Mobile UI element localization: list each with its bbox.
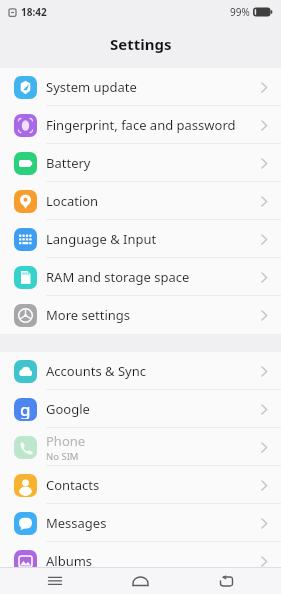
button[interactable]: Accounts & Sync bbox=[0, 352, 281, 390]
button[interactable] bbox=[12, 568, 97, 594]
button[interactable]: Location bbox=[0, 182, 281, 220]
staticText: Fingerprint, face and password bbox=[46, 116, 236, 134]
button[interactable] bbox=[183, 568, 269, 594]
staticText: Google bbox=[46, 400, 90, 418]
staticText: 18:42 bbox=[21, 5, 47, 19]
staticText: RAM and storage space bbox=[46, 268, 190, 286]
staticText: Location bbox=[46, 192, 99, 210]
button[interactable]: Battery bbox=[0, 144, 281, 182]
button[interactable]: Messages bbox=[0, 504, 281, 542]
staticText: Contacts bbox=[46, 476, 100, 494]
staticText: Battery bbox=[46, 154, 91, 172]
staticText: 99% bbox=[230, 5, 250, 19]
button[interactable]: Contacts bbox=[0, 466, 281, 504]
button[interactable]: g bbox=[0, 390, 281, 428]
staticText: g bbox=[20, 398, 31, 419]
staticText: No SIM bbox=[46, 450, 79, 463]
button[interactable]: More settings bbox=[0, 296, 281, 334]
staticText: Settings bbox=[110, 34, 172, 54]
staticText: Language & Input bbox=[46, 230, 157, 248]
staticText: Phone bbox=[46, 432, 86, 450]
staticText: More settings bbox=[46, 306, 131, 324]
staticText: Albums bbox=[46, 552, 93, 570]
button[interactable] bbox=[97, 568, 183, 594]
button[interactable]: Fingerprint, face and password bbox=[0, 106, 281, 144]
button[interactable]: Albums bbox=[0, 542, 281, 580]
staticText: System update bbox=[46, 78, 137, 96]
staticText: Accounts & Sync bbox=[46, 362, 146, 380]
button[interactable]: Language & Input bbox=[0, 220, 281, 258]
button[interactable]: System update bbox=[0, 68, 281, 106]
staticText: Messages bbox=[46, 514, 107, 532]
button[interactable]: RAM and storage space bbox=[0, 258, 281, 296]
button[interactable]: Phone bbox=[0, 428, 281, 466]
